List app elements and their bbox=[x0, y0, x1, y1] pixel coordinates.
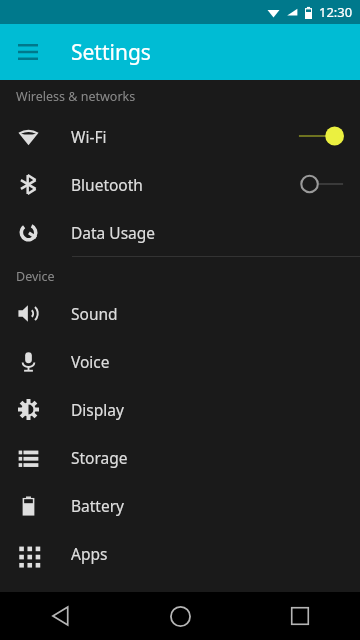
staticText: Apps bbox=[71, 543, 344, 564]
button[interactable]: Recent apps bbox=[240, 592, 360, 640]
button[interactable]: Bluetooth bbox=[0, 160, 360, 208]
button[interactable]: Apps bbox=[0, 529, 360, 577]
button[interactable]: Wi-Fi on bbox=[298, 122, 344, 150]
button[interactable]: Sound bbox=[0, 289, 360, 337]
button[interactable]: Voice bbox=[0, 337, 360, 385]
button[interactable]: Battery bbox=[0, 481, 360, 529]
staticText: Battery bbox=[71, 495, 344, 516]
button[interactable]: Home bbox=[120, 592, 240, 640]
staticText: Wireless & networks bbox=[16, 88, 136, 105]
button[interactable]: Back bbox=[0, 592, 120, 640]
staticText: 12:30 bbox=[319, 3, 353, 21]
staticText: Bluetooth bbox=[71, 174, 298, 195]
staticText: Device bbox=[16, 268, 55, 285]
button[interactable]: Display bbox=[0, 385, 360, 433]
staticText: Sound bbox=[71, 303, 344, 324]
staticText: Storage bbox=[71, 447, 344, 468]
button[interactable]: Storage bbox=[0, 433, 360, 481]
button[interactable]: Data Usage bbox=[0, 208, 360, 256]
staticText: Data Usage bbox=[71, 222, 344, 243]
button[interactable]: Wi-Fi bbox=[0, 112, 360, 160]
button[interactable]: Bluetooth off bbox=[298, 170, 344, 198]
staticText: Display bbox=[71, 399, 344, 420]
button[interactable]: Open navigation drawer bbox=[6, 30, 50, 74]
staticText: Voice bbox=[71, 351, 344, 372]
staticText: Settings bbox=[71, 38, 151, 67]
staticText: Wi-Fi bbox=[71, 126, 298, 147]
